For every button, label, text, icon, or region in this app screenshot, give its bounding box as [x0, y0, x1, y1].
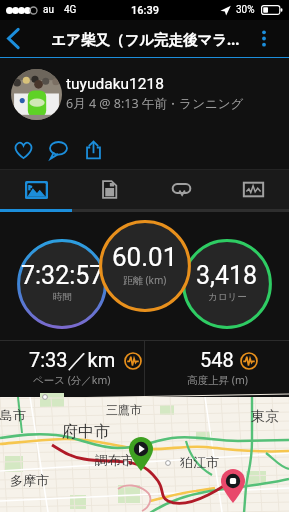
- button[interactable]: 7:32:57: [17, 239, 107, 329]
- button[interactable]: Tab: [73, 170, 145, 209]
- staticText: 東京: [251, 408, 279, 426]
- staticText: 3,418: [196, 261, 258, 290]
- button[interactable]: 60.01: [99, 220, 191, 312]
- staticText: ペース (分／km): [33, 373, 111, 387]
- staticText: 4G: [64, 4, 77, 16]
- staticText: 狛江市: [180, 454, 219, 470]
- staticText: 60.01: [112, 242, 178, 272]
- staticText: 距離 (km): [123, 273, 167, 287]
- staticText: 高度上昇 (m): [187, 373, 248, 387]
- button[interactable]: Like: [9, 136, 37, 164]
- button[interactable]: 548: [145, 341, 289, 397]
- button[interactable]: Tab: [0, 170, 73, 209]
- staticText: 調布市: [95, 452, 134, 468]
- button[interactable]: More options: [239, 20, 289, 57]
- staticText: 三鷹市: [106, 402, 142, 417]
- staticText: 548: [200, 348, 234, 371]
- staticText: 7:33／km: [29, 348, 116, 373]
- button[interactable]: Comment: [44, 136, 72, 164]
- button[interactable]: Tab: [145, 170, 217, 209]
- staticText: エア柴又（フル完走後マラ…: [51, 29, 240, 49]
- button[interactable]: 7:33／km: [0, 341, 144, 397]
- staticText: 時間: [53, 291, 72, 303]
- staticText: 7:32:57: [21, 261, 104, 290]
- button[interactable]: Back: [0, 20, 27, 57]
- staticText: 多摩市: [10, 472, 49, 488]
- button[interactable]: Map: [0, 397, 289, 512]
- staticText: tuyudaku1218: [66, 75, 164, 93]
- staticText: 府中市: [62, 422, 110, 442]
- button[interactable]: Share: [79, 136, 107, 164]
- staticText: 30%: [236, 4, 255, 16]
- staticText: 6月 4 @ 8:13 午前・ランニング: [66, 95, 244, 112]
- staticText: 島市: [0, 407, 26, 423]
- button[interactable]: Tab: [217, 170, 289, 209]
- button[interactable]: 3,418: [182, 239, 272, 329]
- staticText: au: [43, 4, 54, 16]
- button[interactable]: tuyudaku1218: [0, 58, 289, 130]
- staticText: カロリー: [208, 291, 247, 303]
- staticText: 16:39: [131, 4, 159, 17]
